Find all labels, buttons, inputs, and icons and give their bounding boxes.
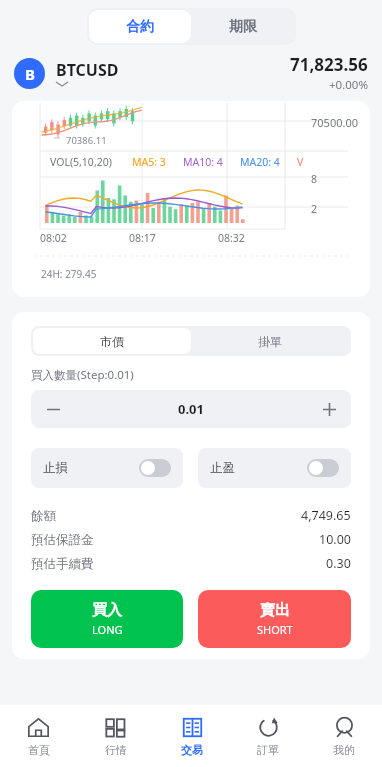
staticText: 掛單 <box>258 334 282 349</box>
staticText: SHORT <box>257 622 293 637</box>
staticText: 首頁 <box>28 743 50 757</box>
staticText: BTCUSD <box>56 59 119 81</box>
staticText: +0.00% <box>329 77 368 93</box>
button[interactable]: 交易 <box>154 705 230 767</box>
button[interactable]: 首頁 <box>0 705 77 767</box>
button[interactable]: 合約 <box>89 10 191 43</box>
button[interactable]: Increase <box>307 390 351 428</box>
staticText: 08:02 <box>40 231 67 245</box>
button[interactable]: 期限 <box>191 10 294 43</box>
button[interactable]: BTCUSD <box>56 59 119 87</box>
staticText: 10.00 <box>319 531 351 548</box>
staticText: 08:17 <box>129 231 156 245</box>
staticText: MA5: 3 <box>132 155 166 169</box>
staticText: 期限 <box>229 18 257 36</box>
button[interactable]: 訂單 <box>230 705 306 767</box>
staticText: 市價 <box>100 334 124 349</box>
staticText: 預估手續費 <box>31 556 94 572</box>
staticText: MA10: 4 <box>183 155 223 169</box>
staticText: 止損 <box>43 460 68 476</box>
staticText: 8 <box>311 172 318 186</box>
button[interactable]: 止損 <box>31 448 183 488</box>
staticText: 訂單 <box>257 743 279 757</box>
staticText: 預估保證金 <box>31 532 94 548</box>
staticText: 71,823.56 <box>290 53 368 76</box>
button[interactable]: 市價 <box>33 328 191 354</box>
staticText: 行情 <box>105 743 127 757</box>
staticText: 合約 <box>126 18 154 36</box>
button[interactable]: 掛單 <box>191 328 349 354</box>
staticText: 交易 <box>181 743 203 757</box>
button[interactable]: 買入 <box>31 590 183 648</box>
staticText: 24H: 279.45 <box>41 267 97 281</box>
staticText: V <box>297 155 304 169</box>
staticText: 70500.00 <box>311 115 358 130</box>
staticText: 0.01 <box>75 400 307 418</box>
staticText: 買入 <box>92 601 122 620</box>
button[interactable]: 我的 <box>306 705 382 767</box>
staticText: 4,749.65 <box>301 507 351 524</box>
staticText: 0.30 <box>326 555 351 572</box>
staticText: 08:32 <box>218 231 245 245</box>
staticText: MA20: 4 <box>240 155 280 169</box>
button[interactable]: 賣出 <box>198 590 351 648</box>
staticText: 止盈 <box>210 460 235 476</box>
staticText: 餘額 <box>31 508 56 524</box>
button[interactable]: 止盈 <box>198 448 351 488</box>
staticText: 70386.11 <box>66 134 107 147</box>
button[interactable]: Decrease <box>31 390 75 428</box>
staticText: 我的 <box>333 743 355 757</box>
staticText: 買入數量(Step:0.01) <box>31 367 134 383</box>
staticText: LONG <box>92 622 123 637</box>
staticText: VOL(5,10,20) <box>50 155 112 169</box>
button[interactable]: 行情 <box>77 705 154 767</box>
button[interactable]: B <box>14 58 45 89</box>
staticText: 2 <box>311 202 318 216</box>
staticText: B <box>25 64 35 84</box>
staticText: 賣出 <box>260 601 290 620</box>
